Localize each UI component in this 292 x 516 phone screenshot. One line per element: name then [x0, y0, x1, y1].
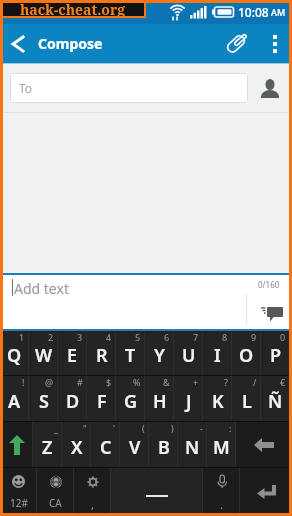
button[interactable]: 8	[203, 331, 232, 376]
button[interactable]: $	[87, 376, 116, 422]
button[interactable]: +	[174, 376, 203, 422]
staticText: 7	[193, 331, 199, 343]
staticText: 2	[48, 331, 54, 343]
button[interactable]: 3	[58, 331, 87, 376]
staticText: #	[77, 376, 83, 388]
button[interactable]: 2	[29, 331, 58, 376]
button[interactable]: #	[58, 376, 87, 422]
staticText: 8	[222, 331, 228, 343]
staticText: I	[214, 343, 221, 368]
staticText: 1	[19, 331, 25, 343]
staticText: AM	[271, 6, 286, 18]
staticText: F	[97, 389, 107, 414]
staticText: "	[83, 422, 87, 434]
staticText: &	[163, 376, 170, 388]
staticText: 3	[77, 331, 83, 343]
button[interactable]: %	[116, 376, 145, 422]
staticText: Y	[154, 343, 165, 368]
button[interactable]	[214, 24, 258, 63]
button[interactable]: _	[33, 422, 62, 468]
staticText: /	[253, 376, 257, 388]
button[interactable]: 1	[0, 331, 29, 376]
staticText: 10:08	[238, 4, 269, 20]
button[interactable]: To	[10, 73, 248, 103]
staticText: M	[213, 435, 230, 460]
staticText: _	[54, 422, 58, 434]
staticText: @	[45, 376, 54, 388]
staticText: .	[220, 497, 223, 512]
staticText: X	[71, 435, 83, 460]
staticText: :	[229, 422, 232, 434]
button[interactable]: 5	[116, 331, 145, 376]
staticText: G	[124, 389, 138, 414]
staticText: T	[125, 343, 136, 368]
button[interactable]: :	[207, 422, 236, 468]
button[interactable]: 9	[232, 331, 261, 376]
button[interactable]: 6	[145, 331, 174, 376]
button[interactable]	[240, 468, 292, 516]
button[interactable]: !	[0, 376, 29, 422]
staticText: R	[96, 343, 108, 368]
button[interactable]: 7	[174, 331, 203, 376]
staticText: B	[158, 435, 170, 460]
staticText: 12#	[10, 496, 28, 510]
staticText: K	[212, 389, 224, 414]
button[interactable]: -	[178, 422, 207, 468]
button[interactable]: 0	[261, 331, 290, 376]
staticText: To	[19, 80, 33, 96]
staticText: 0	[280, 331, 286, 343]
staticText: D	[66, 389, 80, 414]
staticText: P	[270, 343, 282, 368]
staticText: 0/160	[258, 279, 280, 290]
button[interactable]: (	[120, 422, 149, 468]
button[interactable]: ?	[203, 376, 232, 422]
button[interactable]	[252, 295, 292, 331]
staticText: 5	[135, 331, 141, 343]
staticText: J	[186, 389, 192, 414]
button[interactable]: €	[261, 376, 290, 422]
button[interactable]: CA	[37, 468, 74, 516]
staticText: 4	[106, 331, 112, 343]
button[interactable]: .	[203, 468, 240, 516]
button[interactable]: "	[62, 422, 91, 468]
staticText: C	[100, 435, 112, 460]
staticText: S	[39, 389, 49, 414]
staticText: )	[171, 422, 174, 434]
staticText: L	[242, 389, 252, 414]
button[interactable]	[236, 422, 291, 468]
staticText: Ñ	[268, 389, 283, 414]
staticText: -	[200, 422, 203, 434]
button[interactable]: 12#	[0, 468, 37, 516]
staticText: '	[113, 422, 116, 434]
staticText: ?	[224, 376, 228, 388]
staticText: N	[185, 435, 200, 460]
staticText: H	[153, 389, 167, 414]
staticText: $	[106, 376, 112, 388]
staticText: Add text	[14, 279, 69, 298]
button[interactable]: @	[29, 376, 58, 422]
staticText: %	[133, 376, 141, 388]
button[interactable]	[258, 24, 292, 63]
button[interactable]: /	[232, 376, 261, 422]
staticText: Compose	[38, 34, 103, 53]
button[interactable]	[111, 468, 203, 516]
button[interactable]: )	[149, 422, 178, 468]
staticText: 6	[164, 331, 170, 343]
staticText: Q	[7, 343, 22, 368]
button[interactable]	[248, 64, 292, 112]
staticText: ,	[91, 497, 94, 512]
staticText: A	[8, 389, 21, 414]
button[interactable]	[0, 422, 33, 468]
staticText: O	[239, 343, 254, 368]
staticText: E	[67, 343, 78, 368]
staticText: Z	[42, 435, 53, 460]
button[interactable]: Add text	[0, 273, 292, 331]
button[interactable]: ,	[74, 468, 111, 516]
button[interactable]: '	[91, 422, 120, 468]
staticText: +	[193, 376, 199, 388]
button[interactable]: 4	[87, 331, 116, 376]
button[interactable]: &	[145, 376, 174, 422]
button[interactable]	[0, 24, 34, 63]
staticText: U	[182, 343, 196, 368]
staticText: (	[142, 422, 145, 434]
